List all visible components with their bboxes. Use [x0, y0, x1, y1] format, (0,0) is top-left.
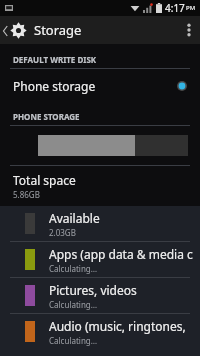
staticText: Calculating… [49, 335, 98, 346]
staticText: DEFAULT WRITE DISK [13, 54, 97, 65]
button[interactable]: Available [0, 206, 200, 241]
staticText: Phone storage [13, 78, 96, 94]
staticText: Storage [34, 21, 82, 39]
staticText: Calculating… [49, 263, 98, 274]
button[interactable]: Audio (music, ringtones, p [0, 314, 200, 349]
staticText: 2.03GB [49, 227, 76, 238]
staticText: Apps (app data & media c [49, 246, 193, 262]
button[interactable]: Pictures, videos [0, 278, 200, 313]
staticText: Calculating… [49, 299, 98, 310]
staticText: Available [49, 210, 100, 226]
button[interactable]: Total space [0, 166, 200, 206]
staticText: 5.86GB [13, 189, 40, 200]
staticText: Pictures, videos [49, 282, 137, 298]
button[interactable]: Phone storage [0, 69, 200, 103]
button[interactable]: Navigate up [0, 22, 29, 39]
staticText: Audio (music, ringtones, p [49, 318, 194, 334]
staticText: Total space [13, 172, 76, 188]
button[interactable]: More options [178, 16, 200, 44]
staticText: 4:17 [165, 1, 185, 15]
staticText: PHONE STORAGE [13, 111, 80, 122]
button[interactable]: Apps (app data & media c [0, 242, 200, 277]
staticText: PM [186, 4, 196, 12]
